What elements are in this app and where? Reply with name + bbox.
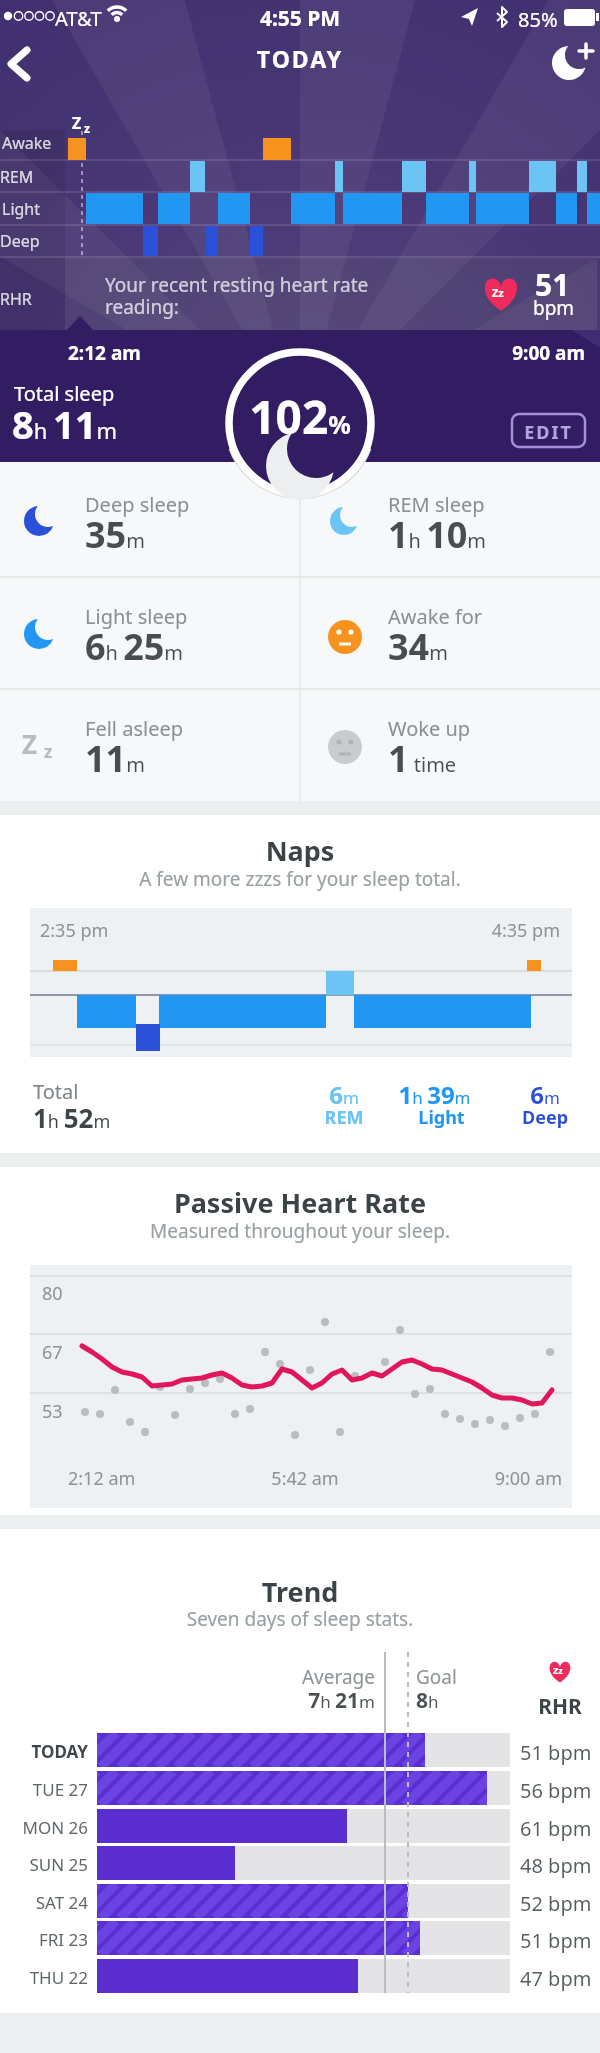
staticText: 9:00 am [460,1466,562,1491]
staticText: Awake for [388,603,483,630]
staticText: 67 [42,1340,63,1365]
staticText: 9:00 am [385,340,585,366]
staticText: Deep [0,230,40,252]
staticText: REM [0,166,34,188]
staticText: 6m [294,1078,394,1111]
staticText: z [84,120,90,136]
staticText: 61 bpm [520,1815,592,1842]
staticText: 5:42 am [250,1466,360,1491]
staticText: Z [22,726,38,761]
staticText: 51 bpm [520,1927,592,1954]
staticText: Average [225,1664,375,1690]
staticText: 1h 10m [388,510,487,559]
staticText: 34m [388,622,448,671]
staticText: TODAY [0,1740,88,1763]
staticText: Measured throughout your sleep. [0,1218,600,1244]
staticText: 11m [85,734,145,783]
staticText: RHR [510,1692,600,1721]
staticText: 2:35 pm [40,918,109,943]
staticText: 35m [85,510,145,559]
staticText: 47 bpm [520,1965,592,1992]
staticText: 80 [42,1281,63,1306]
staticText: 53 [42,1399,63,1424]
staticText: TODAY [0,43,600,74]
staticText: THU 22 [0,1966,88,1989]
staticText: REM [294,1105,394,1130]
staticText: 4:35 pm [360,918,560,943]
staticText: 2:12 am [68,1466,136,1491]
staticText: REM sleep [388,491,485,518]
staticText: 1h 39m [377,1078,492,1111]
staticText: RHR [0,288,32,310]
staticText: 6h 25m [85,622,184,671]
staticText: Zz [553,1664,563,1676]
staticText: Total [33,1078,79,1105]
staticText: 1h 52m [33,1100,111,1135]
staticText: SAT 24 [0,1891,88,1914]
staticText: z [44,740,53,763]
staticText: Woke up [388,715,471,742]
staticText: SUN 25 [0,1853,88,1876]
staticText: FRI 23 [0,1928,88,1951]
staticText: Trend [0,1573,600,1610]
staticText: 2:12 am [68,340,141,366]
staticText: Your recent resting heart rate [105,272,369,298]
staticText: Awake [2,132,52,154]
staticText: TUE 27 [0,1778,88,1801]
staticText: EDIT [512,420,585,445]
staticText: A few more zzzs for your sleep total. [0,866,600,892]
staticText: Total sleep [14,380,115,407]
staticText: Naps [0,832,600,869]
staticText: Light sleep [85,603,188,630]
staticText: 6m [495,1078,595,1111]
staticText: Deep [495,1105,595,1130]
staticText: Seven days of sleep stats. [0,1606,600,1632]
staticText: Deep sleep [85,491,190,518]
staticText: 51 bpm [520,1739,592,1766]
staticText: Z [72,112,82,134]
staticText: Passive Heart Rate [0,1184,600,1221]
staticText: Goal [416,1664,457,1690]
staticText: bpm [533,295,575,321]
staticText: MON 26 [0,1816,88,1839]
staticText: 4:55 PM [0,4,600,33]
staticText: AT&T [55,5,102,32]
staticText: 52 bpm [520,1890,592,1917]
staticText: 7h 21m [225,1686,375,1715]
staticText: reading: [105,294,179,320]
staticText: 102% [0,385,600,448]
staticText: Light [384,1105,499,1130]
staticText: Zz [492,285,504,300]
staticText: Light [2,198,41,220]
staticText: 48 bpm [520,1852,592,1879]
staticText: Fell asleep [85,715,183,742]
staticText: 1 time [388,734,457,783]
staticText: 51 [535,264,570,305]
staticText: 8h 11m [12,398,118,450]
staticText: 56 bpm [520,1777,592,1804]
staticText: 85% [518,6,558,33]
staticText: 8h [416,1686,439,1715]
